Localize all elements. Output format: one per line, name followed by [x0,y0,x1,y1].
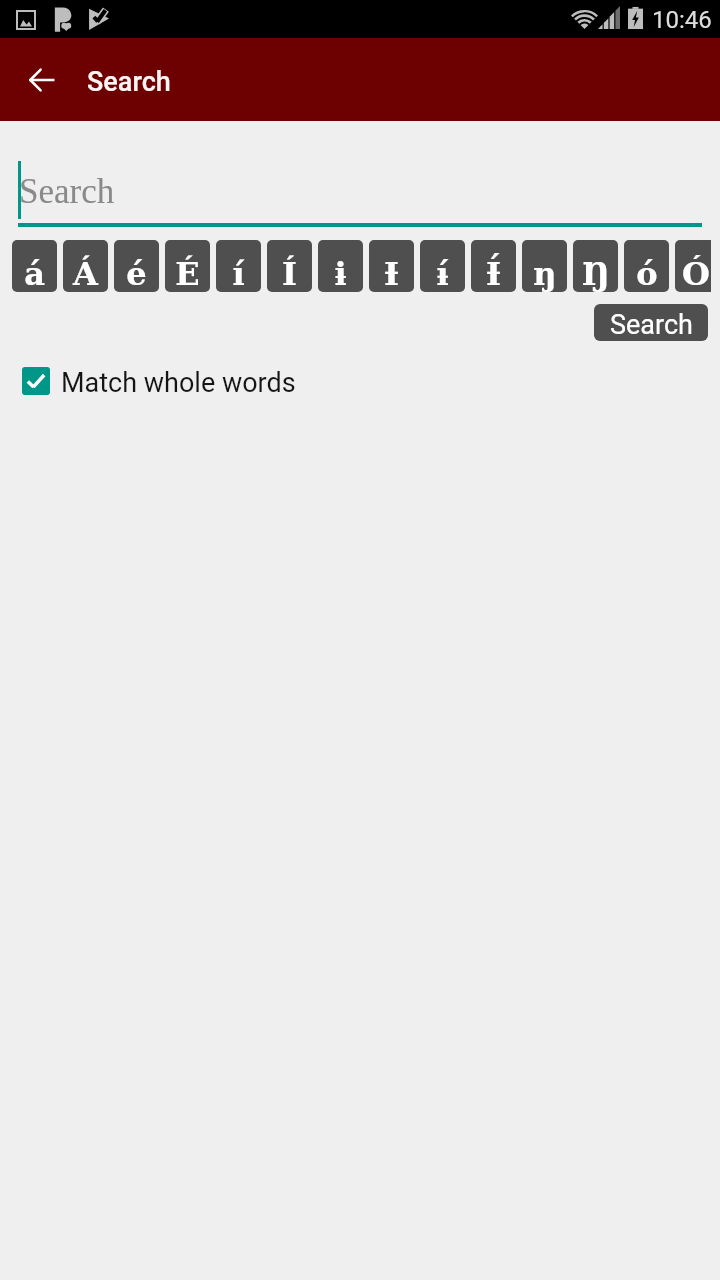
staticText: É [175,255,200,292]
staticText: í [232,255,245,292]
staticText: ɨ́ [436,255,449,292]
button[interactable]: Ŋ [573,240,618,292]
button[interactable]: Í [267,240,312,292]
button[interactable]: Ó [675,240,711,292]
staticText: Match whole words [61,367,296,399]
staticText: Search [19,172,115,211]
button[interactable]: Search [594,304,708,341]
button[interactable]: á [12,240,57,292]
button[interactable]: Match whole words [0,360,720,402]
staticText: á [24,255,45,292]
staticText: Ɨ [384,255,399,292]
staticText: ŋ [533,255,557,292]
staticText: Search [610,309,693,341]
button[interactable]: ɨ́ [420,240,465,292]
button[interactable]: é [114,240,159,292]
button[interactable]: ŋ [522,240,567,292]
button[interactable]: É [165,240,210,292]
staticText: Ó [682,255,710,292]
staticText: ó [636,255,658,292]
staticText: 10:46 [652,6,712,34]
button[interactable]: Ɨ [369,240,414,292]
button[interactable]: ó [624,240,669,292]
staticText: Search [87,66,171,98]
staticText: Á [73,255,98,292]
staticText: Í [282,255,297,292]
button[interactable]: Ɨ́ [471,240,516,292]
staticText: ɨ [334,255,347,292]
staticText: é [126,255,147,292]
button[interactable]: Back [18,56,66,104]
staticText: Ŋ [582,255,610,292]
staticText: Ɨ́ [486,255,501,292]
button[interactable]: í [216,240,261,292]
button[interactable]: Á [63,240,108,292]
button[interactable]: ɨ [318,240,363,292]
